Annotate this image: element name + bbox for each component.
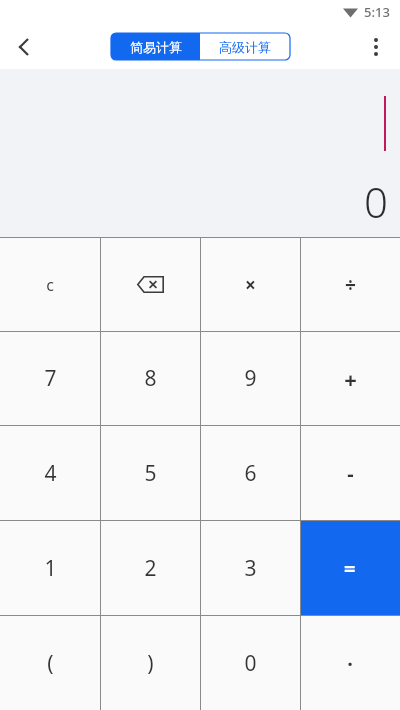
staticText: × (245, 272, 256, 298)
button[interactable]: + (300, 332, 400, 425)
button[interactable]: Back (0, 24, 48, 69)
staticText: - (347, 460, 354, 487)
button[interactable]: × (200, 238, 300, 331)
button[interactable]: ÷ (300, 238, 400, 331)
button[interactable]: 4 (0, 426, 100, 520)
staticText: · (347, 650, 353, 677)
staticText: 8 (144, 364, 157, 393)
staticText: + (344, 364, 357, 394)
button[interactable]: 0 (200, 616, 300, 710)
staticText: 7 (44, 364, 57, 393)
staticText: 0 (364, 173, 388, 230)
staticText: 1 (44, 554, 57, 583)
button[interactable]: 8 (100, 332, 200, 425)
button[interactable]: 1 (0, 521, 100, 615)
staticText: 高级计算 (219, 39, 271, 55)
button[interactable]: 高级计算 (200, 33, 290, 60)
button[interactable]: 7 (0, 332, 100, 425)
staticText: 3 (244, 554, 257, 583)
staticText: 9 (244, 364, 257, 393)
button[interactable]: More options (352, 24, 400, 69)
button[interactable]: 5 (100, 426, 200, 520)
button[interactable]: 简易计算 (111, 33, 200, 60)
staticText: 0 (244, 649, 257, 678)
staticText: 简易计算 (130, 39, 182, 55)
staticText: 4 (44, 459, 57, 488)
button[interactable]: · (300, 616, 400, 710)
staticText: ) (147, 649, 154, 678)
button[interactable]: 9 (200, 332, 300, 425)
button[interactable]: c (0, 238, 100, 331)
staticText: 5:13 (364, 3, 390, 21)
button[interactable]: ( (0, 616, 100, 710)
staticText: c (46, 274, 54, 296)
staticText: ÷ (345, 272, 356, 298)
button[interactable]: 3 (200, 521, 300, 615)
staticText: 6 (244, 459, 257, 488)
button[interactable]: - (300, 426, 400, 520)
staticText: = (344, 555, 356, 582)
staticText: 2 (144, 554, 157, 583)
button[interactable]: ) (100, 616, 200, 710)
button[interactable]: Backspace (100, 238, 200, 331)
staticText: 5 (144, 459, 157, 488)
button[interactable]: 6 (200, 426, 300, 520)
staticText: ( (47, 649, 54, 678)
button[interactable]: = (300, 521, 400, 615)
button[interactable]: 2 (100, 521, 200, 615)
